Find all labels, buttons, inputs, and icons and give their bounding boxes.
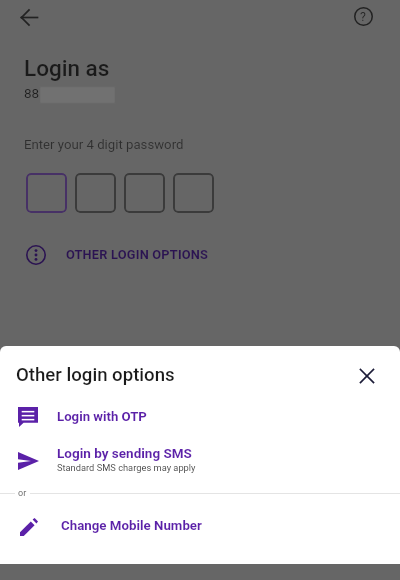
staticText: Standard SMS charges may apply — [57, 462, 196, 473]
staticText: Login with OTP — [57, 409, 147, 424]
staticText: OTHER LOGIN OPTIONS — [66, 247, 209, 262]
button[interactable]: Login with OTP — [0, 402, 400, 430]
button[interactable] — [124, 173, 165, 213]
button[interactable]: Back — [13, 1, 45, 33]
button[interactable]: OTHER LOGIN OPTIONS — [26, 239, 217, 270]
staticText: Other login options — [16, 364, 175, 386]
staticText: ? — [360, 9, 366, 24]
staticText: or — [18, 488, 27, 499]
staticText: Enter your 4 digit password — [24, 137, 184, 152]
button[interactable]: Close — [350, 359, 383, 392]
staticText: Login as — [24, 55, 110, 81]
staticText: Change Mobile Number — [61, 518, 202, 534]
staticText: 88 — [24, 85, 40, 101]
button[interactable]: Help — [347, 0, 379, 32]
button[interactable] — [75, 173, 116, 213]
staticText: Login by sending SMS — [57, 445, 192, 461]
button[interactable]: Change Mobile Number — [0, 512, 400, 540]
button[interactable] — [173, 173, 214, 213]
button[interactable]: Login by sending SMS — [0, 443, 400, 475]
button[interactable] — [26, 173, 67, 213]
